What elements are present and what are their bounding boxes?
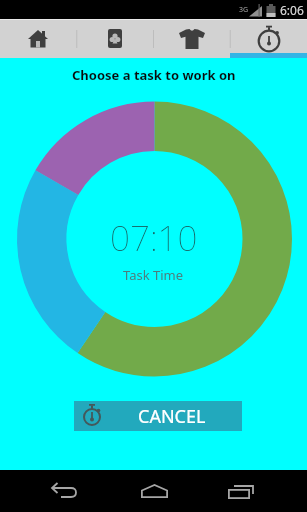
- button[interactable]: [228, 470, 254, 512]
- staticText: 3G: [239, 5, 249, 15]
- staticText: Choose a task to work on: [72, 66, 236, 84]
- button[interactable]: [230, 19, 307, 58]
- button[interactable]: [51, 470, 77, 512]
- staticText: Task Time: [123, 266, 184, 284]
- button[interactable]: CANCEL: [74, 401, 242, 431]
- button[interactable]: [0, 19, 76, 58]
- staticText: 6:06: [280, 2, 304, 18]
- button[interactable]: [140, 470, 168, 512]
- button[interactable]: [153, 19, 230, 58]
- staticText: 07:10: [110, 214, 198, 262]
- staticText: CANCEL: [138, 404, 206, 429]
- button[interactable]: [76, 19, 153, 58]
